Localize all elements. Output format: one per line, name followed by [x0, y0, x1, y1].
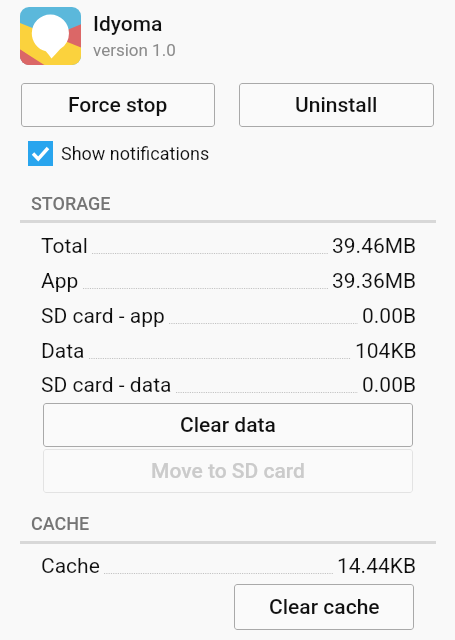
staticText: 104KB — [355, 339, 417, 364]
staticText: Clear data — [180, 413, 276, 438]
staticText: Clear cache — [269, 595, 380, 620]
staticText: Cache — [41, 554, 100, 579]
staticText: 14.44KB — [337, 554, 417, 579]
button[interactable]: Show notifications — [0, 137, 455, 169]
staticText: Move to SD card — [151, 459, 305, 484]
staticText: SD card - data — [41, 373, 172, 398]
button[interactable]: Clear data — [43, 403, 413, 447]
staticText: 39.46MB — [332, 234, 417, 259]
staticText: Total — [41, 234, 88, 259]
button[interactable]: SD card - app — [0, 304, 455, 339]
staticText: CACHE — [31, 513, 90, 534]
staticText: App — [41, 269, 79, 294]
staticText: 39.36MB — [332, 269, 417, 294]
staticText: SD card - app — [41, 304, 165, 329]
button[interactable]: Move to SD card — [43, 449, 413, 493]
staticText: STORAGE — [31, 193, 111, 214]
button[interactable]: Clear cache — [234, 584, 414, 630]
button[interactable]: Data — [0, 339, 455, 374]
staticText: 0.00B — [362, 373, 417, 398]
staticText: Uninstall — [295, 93, 378, 118]
button[interactable]: Cache — [0, 554, 455, 589]
staticText: Idyoma — [93, 12, 163, 37]
staticText: 0.00B — [362, 304, 417, 329]
button[interactable]: Total — [0, 234, 455, 269]
button[interactable]: App — [0, 269, 455, 304]
staticText: Data — [41, 339, 85, 364]
button[interactable]: Force stop — [21, 83, 215, 127]
staticText: Show notifications — [61, 143, 210, 164]
button[interactable]: Uninstall — [239, 83, 434, 127]
staticText: version 1.0 — [93, 40, 176, 60]
staticText: Force stop — [68, 93, 168, 118]
button[interactable]: SD card - data — [0, 373, 455, 408]
